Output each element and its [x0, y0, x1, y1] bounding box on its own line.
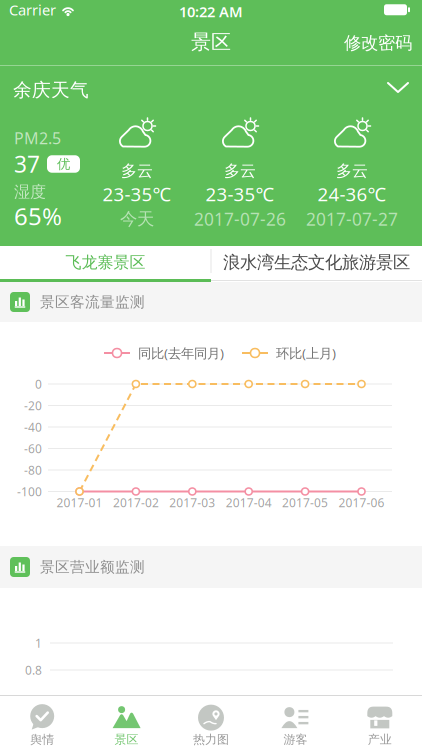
staticText: 景区 [115, 732, 139, 747]
staticText: 今天 [120, 208, 154, 230]
staticText: Carrier [9, 0, 56, 19]
staticText: 浪水湾生态文化旅游景区 [223, 252, 410, 273]
staticText: 2017-07-27 [306, 207, 398, 230]
staticText: 2017-03 [169, 494, 215, 510]
staticText: 热力图 [193, 732, 229, 747]
staticText: 23-35℃ [102, 182, 171, 206]
button[interactable]: 收起天气 [379, 74, 417, 102]
staticText: 产业 [368, 732, 392, 747]
button[interactable]: 热力图 [169, 694, 253, 750]
button[interactable]: 浪水湾生态文化旅游景区 [211, 246, 422, 279]
button[interactable]: 舆情 [0, 694, 84, 750]
staticText: -60 [24, 440, 42, 456]
staticText: 余庆天气 [13, 78, 89, 101]
staticText: 2017-06 [338, 494, 384, 510]
staticText: 65% [14, 200, 62, 232]
staticText: 2017-01 [56, 494, 102, 510]
staticText: -40 [24, 419, 42, 435]
staticText: 10:22 AM [179, 2, 243, 21]
staticText: 多云 [336, 161, 368, 181]
staticText: 优 [57, 156, 70, 172]
staticText: 2017-02 [113, 494, 159, 510]
button[interactable]: 修改密码 [344, 32, 412, 54]
staticText: PM2.5 [14, 127, 61, 149]
staticText: 景区客流量监测 [40, 293, 145, 311]
staticText: 环比(上月) [276, 344, 336, 362]
staticText: 舆情 [30, 732, 54, 747]
button[interactable]: 产业 [338, 694, 422, 750]
staticText: 同比(去年同月) [138, 344, 224, 362]
staticText: -100 [17, 483, 42, 499]
button[interactable]: 游客 [253, 694, 338, 750]
staticText: 多云 [121, 161, 153, 181]
staticText: 修改密码 [344, 32, 412, 54]
staticText: 1 [35, 635, 42, 651]
staticText: 0 [35, 376, 42, 392]
staticText: 0.8 [25, 662, 42, 678]
staticText: 景区 [191, 30, 231, 54]
staticText: 飞龙寨景区 [65, 253, 145, 272]
staticText: 37 [14, 149, 40, 179]
staticText: -20 [24, 397, 42, 413]
staticText: 2017-07-26 [194, 207, 286, 230]
staticText: 游客 [283, 732, 307, 747]
staticText: 湿度 [14, 182, 46, 202]
button[interactable]: 飞龙寨景区 [0, 246, 211, 279]
button[interactable]: 景区 [84, 694, 169, 750]
staticText: 2017-04 [226, 494, 272, 510]
staticText: -80 [24, 462, 42, 478]
staticText: 多云 [224, 161, 256, 181]
staticText: 景区营业额监测 [40, 558, 145, 576]
staticText: 2017-05 [282, 494, 328, 510]
staticText: 24-36℃ [317, 182, 386, 206]
staticText: 23-35℃ [205, 182, 274, 206]
